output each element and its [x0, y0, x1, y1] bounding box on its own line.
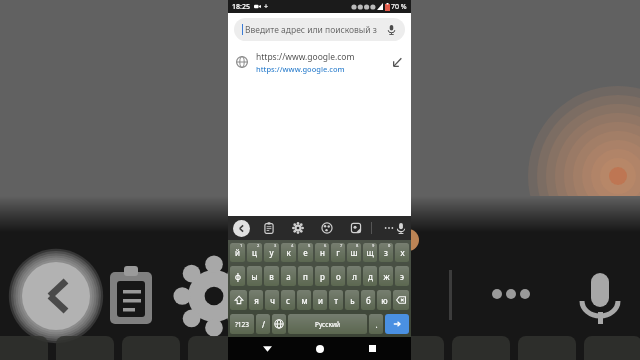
button[interactable]: Home	[306, 337, 334, 360]
staticText: з	[384, 247, 388, 258]
button[interactable]: я	[249, 290, 263, 310]
staticText: т	[334, 295, 338, 306]
staticText: в	[269, 271, 274, 282]
button[interactable]: /	[256, 314, 270, 334]
staticText: 18:25	[232, 2, 250, 12]
button[interactable]: ц	[247, 243, 262, 262]
button[interactable]: More options	[383, 222, 395, 234]
button[interactable]: д	[363, 266, 377, 286]
button[interactable]: е	[298, 243, 313, 262]
staticText: о	[336, 271, 341, 282]
staticText: н	[320, 247, 325, 258]
staticText: https://www.google.com	[256, 51, 355, 63]
button[interactable]: Backspace	[393, 290, 409, 310]
button[interactable]: Theme	[321, 222, 333, 234]
button[interactable]: Русский	[288, 314, 367, 334]
button[interactable]: Recents	[358, 337, 386, 360]
staticText: э	[400, 271, 404, 282]
button[interactable]: ?123	[230, 314, 254, 334]
staticText: я	[254, 295, 259, 306]
staticText: 7	[340, 243, 343, 248]
button[interactable]: й	[230, 243, 245, 262]
button[interactable]: ч	[265, 290, 279, 310]
staticText: Русский	[315, 320, 340, 329]
button[interactable]: т	[329, 290, 343, 310]
staticText: д	[368, 271, 373, 282]
staticText: ы	[251, 271, 258, 282]
staticText: х	[400, 247, 405, 258]
staticText: у	[269, 247, 274, 258]
staticText: б	[366, 295, 371, 306]
button[interactable]: в	[264, 266, 279, 286]
button[interactable]: щ	[363, 243, 377, 262]
button[interactable]: ф	[230, 266, 245, 286]
staticText: ш	[350, 247, 358, 258]
button[interactable]: https://www.google.com	[228, 46, 411, 78]
button[interactable]: Voice search	[386, 24, 397, 35]
button[interactable]: Clipboard	[263, 222, 275, 234]
staticText: л	[352, 271, 357, 282]
button[interactable]: Voice input	[395, 222, 407, 234]
button[interactable]: о	[331, 266, 345, 286]
button[interactable]: н	[315, 243, 329, 262]
staticText: ч	[270, 295, 275, 306]
staticText: ю	[381, 295, 388, 306]
staticText: Введите адрес или поисковый з	[245, 24, 377, 36]
button[interactable]: б	[361, 290, 375, 310]
staticText: 9	[372, 243, 375, 248]
button[interactable]: ь	[345, 290, 359, 310]
staticText: 8	[356, 243, 359, 248]
button[interactable]: Shift	[230, 290, 247, 310]
staticText: ь	[350, 295, 355, 306]
staticText: а	[286, 271, 291, 282]
staticText: https://www.google.com	[256, 64, 345, 74]
staticText: м	[301, 295, 308, 306]
button[interactable]: Change language	[272, 314, 286, 334]
button[interactable]: к	[281, 243, 296, 262]
button[interactable]: и	[313, 290, 327, 310]
staticText: й	[235, 247, 240, 258]
staticText: щ	[366, 247, 374, 258]
button[interactable]: ж	[379, 266, 393, 286]
button[interactable]: Back	[253, 337, 281, 360]
button[interactable]: .	[369, 314, 383, 334]
staticText: с	[286, 295, 290, 306]
button[interactable]: ы	[247, 266, 262, 286]
staticText: +	[264, 2, 269, 12]
staticText: /	[262, 319, 265, 330]
staticText: е	[303, 247, 308, 258]
staticText: и	[318, 295, 323, 306]
staticText: р	[320, 271, 325, 282]
button[interactable]: Back	[233, 220, 250, 237]
button[interactable]: ш	[347, 243, 361, 262]
button[interactable]: Sticker	[350, 222, 362, 234]
button[interactable]: Введите адрес или поисковый з	[234, 18, 405, 41]
button[interactable]: Enter	[385, 314, 409, 334]
button[interactable]: у	[264, 243, 279, 262]
button[interactable]: з	[379, 243, 393, 262]
button[interactable]: с	[281, 290, 295, 310]
button[interactable]: Floating action	[397, 229, 419, 251]
staticText: 3	[274, 243, 277, 248]
staticText: ?123	[235, 320, 249, 329]
button[interactable]: м	[297, 290, 311, 310]
staticText: ц	[252, 247, 257, 258]
button[interactable]: ю	[377, 290, 391, 310]
button[interactable]: р	[315, 266, 329, 286]
staticText: 4	[291, 243, 294, 248]
staticText: к	[286, 247, 291, 258]
staticText: п	[303, 271, 308, 282]
button[interactable]: а	[281, 266, 296, 286]
button[interactable]: п	[298, 266, 313, 286]
staticText: 0	[388, 243, 391, 248]
button[interactable]: л	[347, 266, 361, 286]
button[interactable]: Insert suggestion	[392, 57, 403, 68]
staticText: .	[375, 319, 378, 330]
button[interactable]: э	[395, 266, 409, 286]
button[interactable]: х	[395, 243, 409, 262]
button[interactable]: г	[331, 243, 345, 262]
staticText: 70 %	[391, 2, 407, 12]
button[interactable]: Settings	[292, 222, 304, 234]
staticText: г	[336, 247, 340, 258]
staticText: 5	[308, 243, 311, 248]
